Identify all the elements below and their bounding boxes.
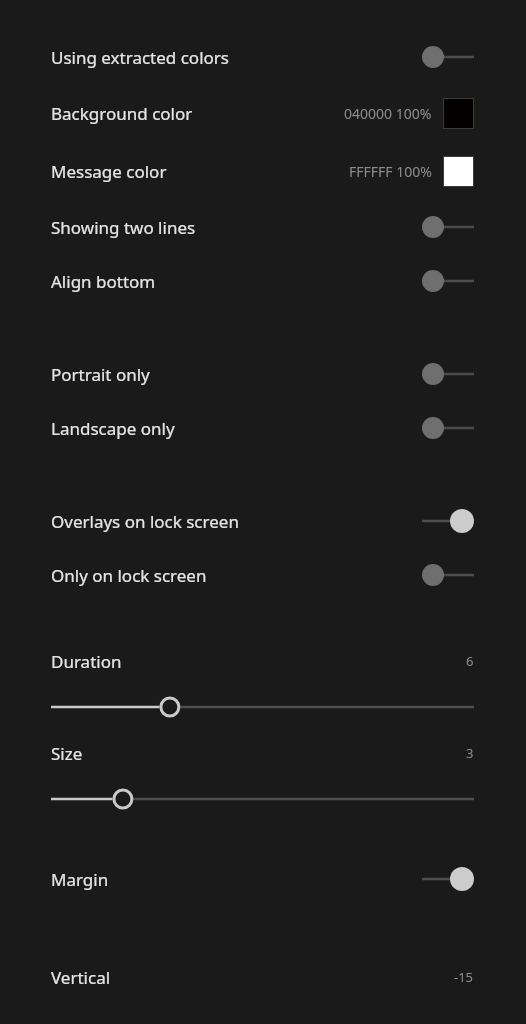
staticText: Showing two lines <box>51 216 196 239</box>
button[interactable]: Overlays on lock screen <box>0 494 526 548</box>
button[interactable]: Duration <box>0 641 526 733</box>
staticText: Message color <box>51 160 167 183</box>
button[interactable]: Toggle, off <box>422 210 474 244</box>
button[interactable]: Portrait only <box>0 347 526 401</box>
staticText: 6 <box>466 652 474 670</box>
button[interactable]: Only on lock screen <box>0 548 526 602</box>
button[interactable]: Size <box>0 733 526 825</box>
staticText: Overlays on lock screen <box>51 510 239 533</box>
staticText: Only on lock screen <box>51 564 207 587</box>
button[interactable]: Landscape only <box>0 401 526 455</box>
button[interactable]: Toggle, off <box>422 40 474 74</box>
button[interactable]: Message color <box>0 142 526 200</box>
button[interactable]: Toggle, on <box>422 862 474 896</box>
button[interactable]: Margin <box>0 852 526 906</box>
staticText: Using extracted colors <box>51 46 229 69</box>
staticText: Landscape only <box>51 417 175 440</box>
staticText: Vertical <box>51 966 111 989</box>
button[interactable]: Toggle, on <box>422 504 474 538</box>
button[interactable]: Toggle, off <box>422 357 474 391</box>
staticText: 040000 100% <box>344 104 432 123</box>
staticText: -15 <box>454 968 474 986</box>
staticText: Background color <box>51 102 193 125</box>
staticText: 3 <box>466 744 474 762</box>
button[interactable]: Align bottom <box>0 254 526 308</box>
button[interactable]: Vertical <box>0 957 526 997</box>
button[interactable]: Toggle, off <box>422 411 474 445</box>
button[interactable]: Using extracted colors <box>0 30 526 84</box>
staticText: Duration <box>51 650 122 673</box>
button[interactable]: Toggle, off <box>422 558 474 592</box>
staticText: Portrait only <box>51 363 150 386</box>
staticText: FFFFFF 100% <box>349 162 432 181</box>
staticText: Margin <box>51 868 109 891</box>
staticText: Align bottom <box>51 270 156 293</box>
button[interactable]: Background color <box>0 84 526 142</box>
button[interactable]: Toggle, off <box>422 264 474 298</box>
button[interactable]: Showing two lines <box>0 200 526 254</box>
staticText: Size <box>51 742 83 765</box>
